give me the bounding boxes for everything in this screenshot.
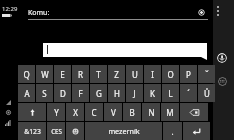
staticText: V [111,107,116,118]
button[interactable]: S [36,84,53,102]
button[interactable]: mezerník [85,122,162,140]
staticText: G [96,88,102,99]
button[interactable]: Q [18,65,35,83]
staticText: mezerník [108,126,140,136]
button[interactable]: Y [47,103,65,121]
button[interactable]: D [54,84,71,102]
button[interactable]: K [144,84,161,102]
staticText: E [60,69,65,80]
button[interactable]: Shift [18,103,46,121]
button[interactable]: ´ [180,84,197,102]
staticText: L [168,88,173,99]
staticText: S [42,88,47,99]
button[interactable]: Backspace [180,103,208,121]
button[interactable]: W [36,65,53,83]
staticText: T [96,69,101,80]
button[interactable]: E [54,65,71,83]
button[interactable]: Z [108,65,125,83]
button[interactable]: Ů [198,84,215,102]
button[interactable]: M [161,103,179,121]
button[interactable]: H [108,84,125,102]
staticText: U [132,69,138,80]
button[interactable]: G [90,84,107,102]
staticText: N [148,107,155,118]
staticText: C [91,107,97,118]
staticText: B [129,107,135,118]
staticText: Q [23,69,30,80]
button[interactable]: U [126,65,143,83]
staticText: H [114,88,120,99]
button[interactable]: V [104,103,122,121]
staticText: I [151,69,154,80]
staticText: F [78,88,83,99]
button[interactable]: Emoji [66,122,84,140]
staticText: J [133,88,136,99]
button[interactable]: O [162,65,179,83]
button[interactable]: Enter [183,122,210,140]
staticText: W [41,69,49,80]
staticText: Y [54,107,59,118]
staticText: A [24,88,30,99]
button[interactable]: T [90,65,107,83]
staticText: ´ [187,87,190,99]
button[interactable]: Voice input [217,53,227,63]
button[interactable]: F [72,84,89,102]
staticText: D [60,88,66,99]
button[interactable]: CES [47,122,65,140]
staticText: . [171,126,174,137]
button[interactable]: ˇ [198,65,215,83]
staticText: P [186,69,191,80]
button[interactable]: X [66,103,84,121]
button[interactable]: J [126,84,143,102]
staticText: 12:29 [2,5,18,13]
staticText: X [73,107,78,118]
button[interactable]: P [180,65,197,83]
staticText: ˇ [205,68,209,80]
button[interactable]: . [163,122,182,140]
button[interactable]: L [162,84,179,102]
staticText: Komu: [28,8,50,18]
staticText: CES [51,127,62,135]
staticText: M [166,107,174,118]
staticText: O [167,69,174,80]
button[interactable]: N [142,103,160,121]
staticText: &123 [24,127,41,136]
button[interactable]: Keyboard language [218,77,227,86]
button[interactable]: A [18,84,35,102]
staticText: Z [114,69,119,80]
button[interactable]: B [123,103,141,121]
button[interactable]: C [85,103,103,121]
button[interactable]: &123 [18,122,46,140]
button[interactable]: I [144,65,161,83]
button[interactable]: Add recipient [198,9,205,16]
staticText: Ů [204,88,210,99]
staticText: R [78,69,83,80]
button[interactable]: R [72,65,89,83]
staticText: K [150,88,155,99]
button[interactable]: More options [216,5,220,17]
